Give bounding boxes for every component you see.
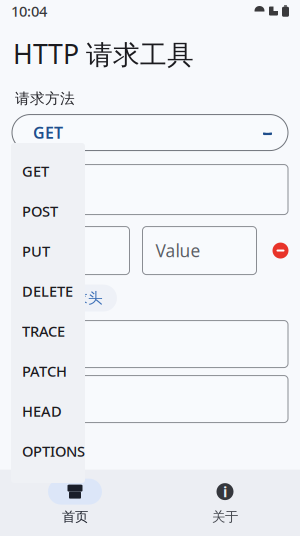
button[interactable]: POST xyxy=(11,191,85,231)
staticText: HEAD xyxy=(22,401,62,421)
button[interactable]: TRACE xyxy=(11,311,85,351)
button[interactable]: Remove header xyxy=(269,240,291,262)
staticText: 关于 xyxy=(212,509,238,525)
button[interactable]: HEAD xyxy=(11,391,85,431)
staticText: 添加请求头 xyxy=(28,289,103,307)
staticText: DELETE xyxy=(22,281,73,301)
staticText: 10:04 xyxy=(11,1,47,21)
staticText: POST xyxy=(22,201,58,221)
staticText: TRACE xyxy=(22,321,65,341)
staticText: PATCH xyxy=(22,361,67,381)
staticText: 首页 xyxy=(62,509,88,525)
button[interactable]: GET xyxy=(11,151,85,191)
button[interactable]: DELETE xyxy=(11,271,85,311)
button[interactable]: OPTIONS xyxy=(11,431,85,471)
staticText: OPTIONS xyxy=(22,441,85,461)
staticText: Value xyxy=(155,239,200,262)
button[interactable]: PATCH xyxy=(11,351,85,391)
staticText: HTTP 请求工具 xyxy=(13,36,194,72)
button[interactable]: 添加请求头 xyxy=(14,285,117,312)
button[interactable]: PUT xyxy=(11,231,85,271)
staticText: GET xyxy=(33,122,63,143)
button[interactable]: 首页 xyxy=(0,479,150,525)
button[interactable]: GET xyxy=(12,115,288,151)
staticText: 请求方法 xyxy=(15,90,75,108)
staticText: PUT xyxy=(22,241,50,261)
staticText: i xyxy=(223,482,227,501)
button[interactable]: i xyxy=(150,479,300,525)
staticText: GET xyxy=(22,161,49,181)
